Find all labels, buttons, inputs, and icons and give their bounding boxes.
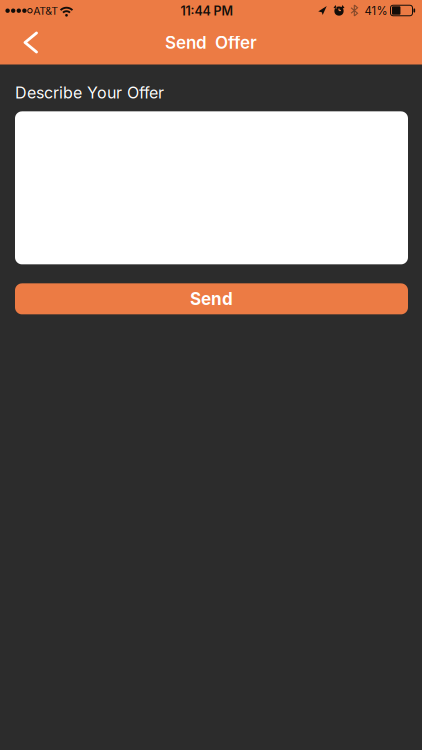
staticText: 11:44 PM xyxy=(180,3,233,18)
staticText: Describe Your Offer xyxy=(15,83,164,102)
staticText: 41% xyxy=(364,4,387,18)
staticText: AT&T xyxy=(33,4,58,17)
staticText: Send Offer xyxy=(165,32,257,53)
button[interactable]: Send xyxy=(15,283,408,314)
button[interactable]: Back xyxy=(15,23,46,62)
staticText: Send xyxy=(190,289,233,309)
